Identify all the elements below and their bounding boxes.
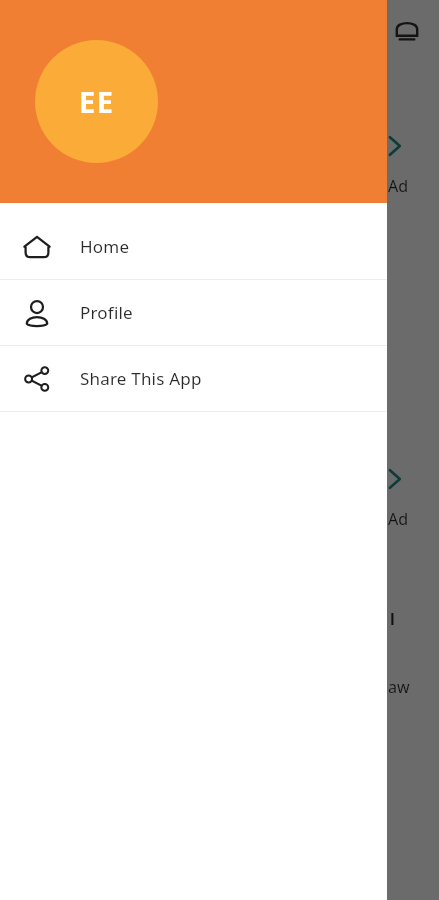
- button[interactable]: Share This App: [0, 346, 387, 411]
- other: Profile: [22, 298, 52, 328]
- staticText: Ad: [388, 175, 409, 197]
- other: Home: [22, 232, 52, 262]
- button[interactable]: Notifications: [392, 16, 422, 46]
- staticText: EE: [79, 82, 115, 121]
- button[interactable]: Profile: [0, 280, 387, 345]
- other: Share This App: [22, 364, 52, 394]
- staticText: Profile: [80, 301, 133, 324]
- staticText: Home: [80, 235, 130, 258]
- staticText: Share This App: [80, 367, 202, 390]
- staticText: aw: [388, 676, 410, 698]
- staticText: l: [390, 608, 395, 630]
- button[interactable]: Home: [0, 214, 387, 279]
- staticText: Ad: [388, 508, 409, 530]
- button[interactable]: EE: [35, 40, 158, 163]
